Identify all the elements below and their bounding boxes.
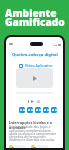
button[interactable]: Game tool (27, 107, 33, 113)
staticText: A interatividade dos jogos e aplicativos… (9, 125, 60, 142)
button[interactable]: Game tool (19, 107, 25, 113)
button[interactable]: Play video (16, 68, 53, 88)
staticText: Quebra-cabeça digital (12, 52, 58, 58)
staticText: Gamificado (5, 15, 65, 29)
button[interactable]: Vídeo Aplicativo (19, 63, 53, 68)
staticText: Ambiente (5, 6, 57, 20)
button[interactable]: Game tool (51, 107, 57, 113)
button[interactable]: Game tool (43, 107, 49, 113)
button[interactable]: Game tool (35, 107, 41, 113)
staticText: Interrupções lúcidas e a atividade (9, 120, 63, 130)
staticText: Vídeo Aplicativo (25, 63, 53, 68)
